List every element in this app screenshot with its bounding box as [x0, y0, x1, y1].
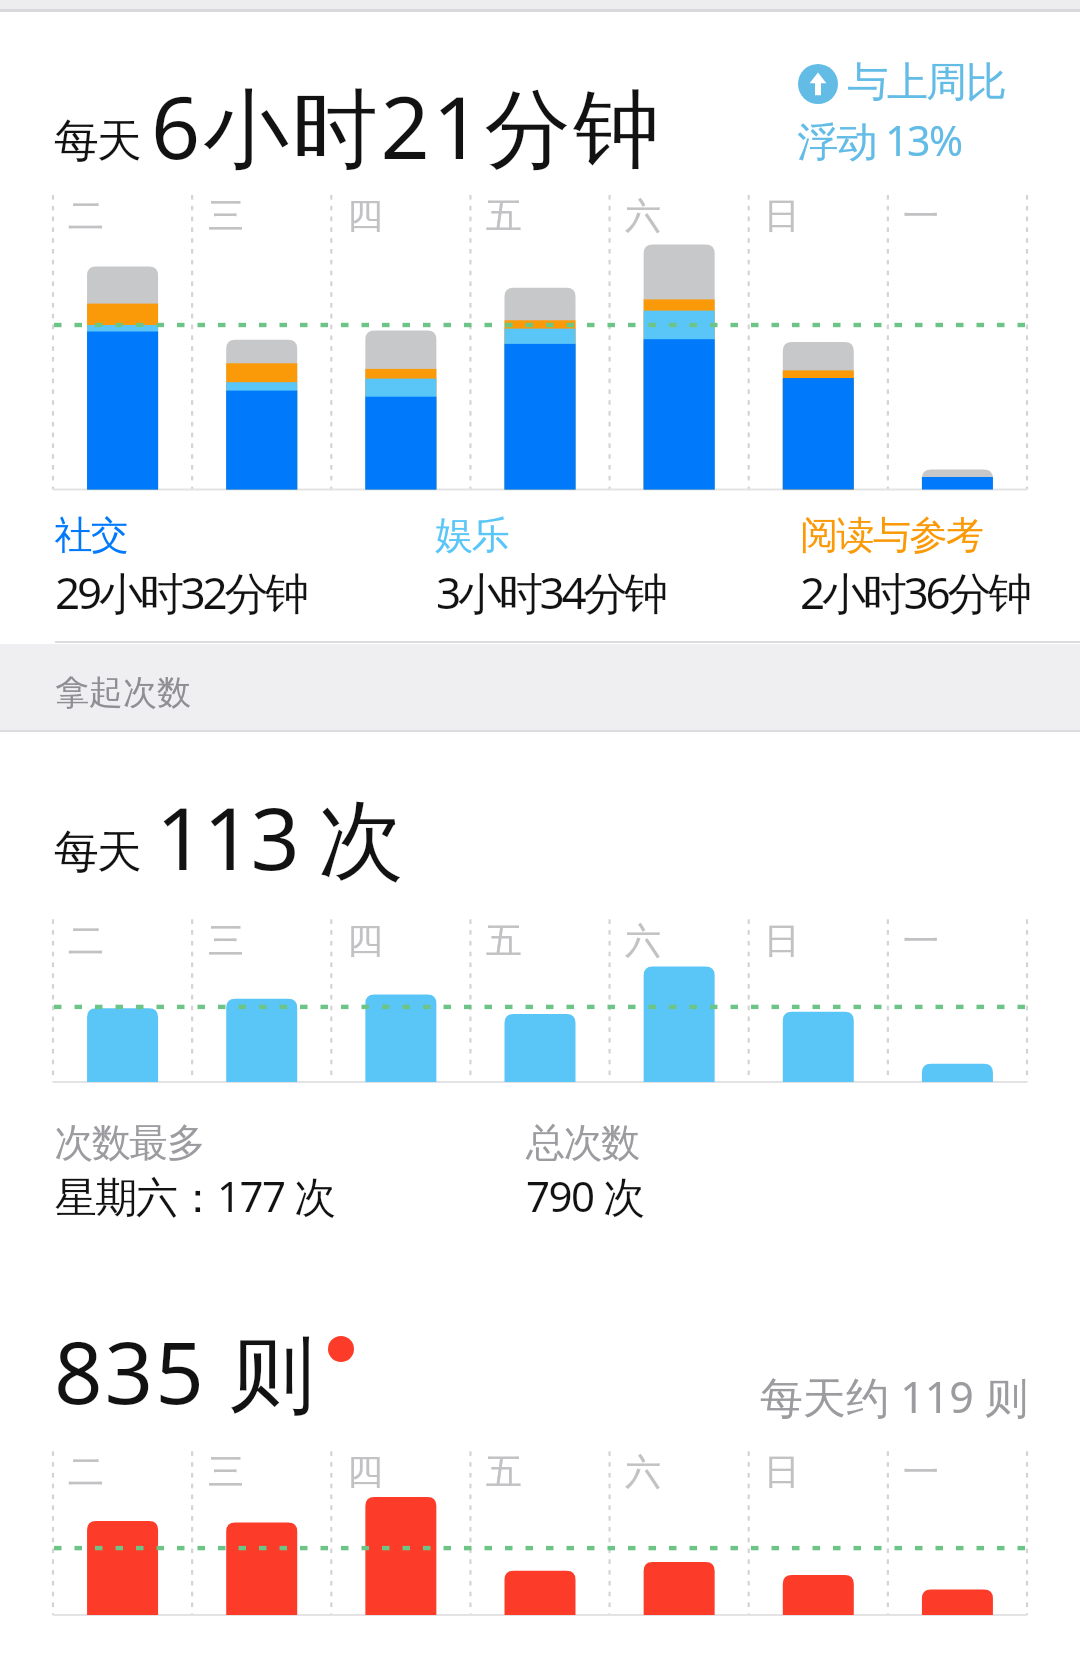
staticText: 拿起次数 [55, 671, 191, 714]
staticText: 三 [208, 1449, 244, 1494]
staticText: 四 [347, 193, 383, 238]
staticText: 一 [903, 918, 939, 963]
staticText: 3小时34分钟 [436, 562, 666, 622]
staticText: 113 次 [156, 778, 402, 895]
staticText: 与上周比 [848, 57, 1006, 109]
button[interactable]: Pickups details [0, 732, 1080, 1277]
staticText: 四 [347, 918, 383, 963]
staticText: 一 [903, 193, 939, 238]
staticText: 835 则 [54, 1313, 317, 1429]
staticText: 29小时32分钟 [55, 562, 307, 622]
button[interactable]: 娱乐 [436, 511, 776, 619]
staticText: 六 [625, 193, 661, 238]
staticText: 五 [486, 193, 522, 238]
staticText: 每天约 119 则 [760, 1367, 1029, 1426]
staticText: 6小时21分钟 [151, 67, 663, 184]
staticText: 二 [68, 193, 104, 238]
button[interactable]: Pickups section header [0, 644, 1080, 730]
staticText: 社交 [55, 511, 128, 559]
staticText: 六 [625, 1449, 661, 1494]
staticText: 星期六：177 次 [55, 1167, 335, 1224]
staticText: 二 [68, 918, 104, 963]
staticText: 娱乐 [436, 511, 509, 559]
staticText: 2小时36分钟 [800, 562, 1030, 622]
staticText: 每天 [55, 113, 141, 170]
staticText: 五 [486, 918, 522, 963]
staticText: 总次数 [526, 1118, 639, 1167]
staticText: 四 [347, 1449, 383, 1494]
staticText: 790 次 [526, 1167, 644, 1224]
staticText: 三 [208, 193, 244, 238]
staticText: 浮动 13% [797, 112, 962, 168]
staticText: 次数最多 [55, 1118, 205, 1167]
staticText: 三 [208, 918, 244, 963]
button[interactable]: Screen time details [0, 12, 1080, 641]
staticText: 日 [764, 193, 800, 238]
staticText: 一 [903, 1449, 939, 1494]
button[interactable]: 阅读与参考 [800, 511, 1080, 619]
other: Increase compared with last week [798, 64, 838, 104]
staticText: 每天 [55, 824, 141, 881]
staticText: 日 [764, 918, 800, 963]
button[interactable]: 社交 [55, 511, 395, 619]
staticText: 二 [68, 1449, 104, 1494]
staticText: 五 [486, 1449, 522, 1494]
staticText: 日 [764, 1449, 800, 1494]
staticText: 六 [625, 918, 661, 963]
staticText: 阅读与参考 [800, 511, 983, 559]
button[interactable]: Notifications details [0, 1290, 1080, 1630]
